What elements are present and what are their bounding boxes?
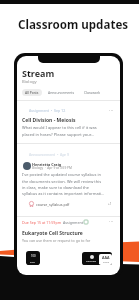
staticText: Eukaryote Cell Structure xyxy=(22,230,83,237)
staticText: ⋯ xyxy=(109,108,114,113)
staticText: You can use them or request to go to for xyxy=(22,238,91,243)
button[interactable]: More options xyxy=(108,107,115,114)
staticText: AAA xyxy=(102,255,110,260)
button[interactable]: AAA xyxy=(99,254,112,265)
staticText: Biology xyxy=(22,79,37,85)
staticText: Announcement • Apr 9 xyxy=(29,152,70,157)
staticText: 100 xyxy=(31,254,36,258)
staticText: What would I appear to this cell if it w… xyxy=(22,125,97,137)
staticText: Due Sep 15 at 11:59pm xyxy=(22,220,61,225)
staticText: Share xyxy=(103,261,109,264)
button[interactable]: Classwork xyxy=(81,89,104,96)
staticText: Announcements xyxy=(48,90,75,95)
staticText: Assignment xyxy=(63,220,84,225)
button[interactable]: Announcements xyxy=(45,89,78,96)
staticText: Classroom updates xyxy=(18,17,129,33)
staticText: I've posted the updated course syllabus … xyxy=(22,172,105,196)
staticText: Classwork xyxy=(84,90,101,95)
staticText: likes xyxy=(30,260,36,263)
staticText: Stream xyxy=(22,67,55,79)
staticText: course_syllabus.pdf xyxy=(36,202,70,207)
button[interactable]: More options xyxy=(108,218,115,225)
button[interactable]: Like xyxy=(26,251,40,265)
staticText: Assignment • Sep 12 xyxy=(29,108,66,113)
staticText: ⋯ xyxy=(109,219,114,224)
staticText: Biology · Apr 9 at 3:59 PM xyxy=(32,166,72,170)
button[interactable]: Subscribe xyxy=(84,252,99,265)
staticText: Henrietta Craig xyxy=(32,162,62,167)
staticText: All Posts xyxy=(25,90,39,95)
button[interactable]: All Posts xyxy=(22,89,42,96)
staticText: +1 xyxy=(108,202,112,206)
staticText: Subscribe xyxy=(86,260,97,263)
staticText: Cell Division - Meiosis xyxy=(22,117,76,124)
